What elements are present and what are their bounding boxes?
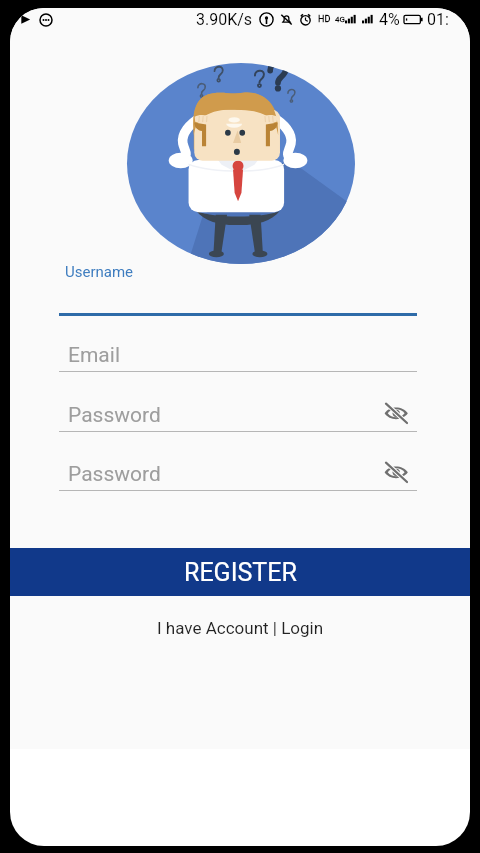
staticText: 4G xyxy=(335,15,345,24)
staticText: 3.90K/s xyxy=(196,10,253,29)
staticText: I have Account | Login xyxy=(157,618,324,638)
button[interactable]: Show password xyxy=(381,456,411,486)
button[interactable]: Email xyxy=(59,327,417,373)
staticText: Username xyxy=(65,263,134,281)
button[interactable]: Show password xyxy=(381,397,411,427)
staticText: 01: xyxy=(427,10,449,29)
button[interactable]: Password xyxy=(59,446,417,492)
staticText: Password xyxy=(68,462,161,487)
staticText: Email xyxy=(68,343,120,368)
button[interactable]: REGISTER xyxy=(10,548,470,596)
staticText: REGISTER xyxy=(184,558,297,587)
staticText: 4% xyxy=(379,10,400,29)
button[interactable]: Password xyxy=(59,387,417,433)
button[interactable]: I have Account | Login xyxy=(10,614,470,642)
staticText: HD xyxy=(318,14,331,25)
staticText: Password xyxy=(68,403,161,428)
